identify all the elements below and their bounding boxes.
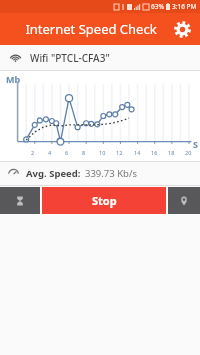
staticText: 12	[116, 149, 123, 156]
button[interactable]: History	[0, 187, 40, 214]
staticText: Internet Speed Check	[25, 20, 157, 38]
staticText: 8	[82, 149, 86, 156]
staticText: 10	[99, 149, 106, 156]
staticText: 14	[134, 149, 141, 156]
button[interactable]: Settings	[170, 17, 194, 41]
staticText: 20	[185, 149, 192, 156]
staticText: 6	[65, 149, 69, 156]
staticText: 4	[48, 149, 52, 156]
staticText: Wifi "PTCL-CFA3"	[30, 51, 110, 65]
staticText: Mb	[6, 73, 21, 85]
staticText: Avg. Speed:	[26, 167, 81, 180]
staticText: S	[193, 138, 198, 150]
staticText: Stop	[92, 193, 117, 208]
staticText: 339.73 Kb/s	[85, 167, 137, 180]
button[interactable]: Avg. Speed:	[0, 162, 200, 185]
staticText: 18	[168, 149, 175, 156]
staticText: 16	[151, 149, 158, 156]
staticText: 3:16 PM	[172, 2, 197, 11]
staticText: 63%	[151, 2, 164, 11]
button[interactable]: Location	[168, 187, 200, 214]
staticText: 2	[31, 149, 35, 156]
button[interactable]: Wifi "PTCL-CFA3"	[0, 45, 200, 70]
button[interactable]: Stop	[42, 187, 166, 214]
